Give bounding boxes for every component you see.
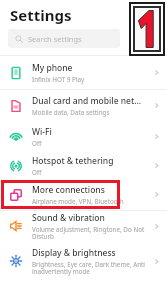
button[interactable]: My phone bbox=[0, 56, 167, 89]
staticText: Airplane mode, VPN, Bluetooth bbox=[32, 197, 124, 206]
staticText: Search settings bbox=[28, 34, 82, 44]
staticText: More connections bbox=[32, 184, 105, 196]
button[interactable]: Display and brightness bbox=[0, 241, 167, 281]
staticText: My phone bbox=[32, 62, 73, 74]
staticText: Brightness, Eye care, Dark theme, Anti i… bbox=[32, 260, 145, 276]
staticText: Infinix HOT 9 Play bbox=[32, 75, 85, 84]
staticText: Display & brightness bbox=[32, 247, 116, 259]
staticText: Hotspot & tethering bbox=[32, 155, 114, 167]
button[interactable]: Sound and vibration bbox=[0, 211, 167, 241]
staticText: Wi-Fi bbox=[32, 126, 52, 138]
staticText: Settings bbox=[10, 5, 72, 25]
button[interactable]: Search settings bbox=[8, 29, 120, 48]
button[interactable]: Hotspot and tethering bbox=[0, 152, 167, 179]
staticText: Volume adjustment, Ringtone, Do Not Dist… bbox=[32, 225, 145, 241]
button[interactable]: Dual card and mobile network bbox=[0, 90, 167, 121]
button[interactable]: More connections bbox=[0, 179, 167, 210]
button[interactable]: Wi-Fi bbox=[0, 121, 167, 152]
staticText: Dual card and mobile network bbox=[32, 95, 145, 107]
staticText: Off bbox=[32, 139, 42, 148]
staticText: Off bbox=[32, 168, 42, 177]
staticText: Sound & vibration bbox=[32, 212, 105, 224]
staticText: Mobile data, Data settings bbox=[32, 108, 110, 117]
